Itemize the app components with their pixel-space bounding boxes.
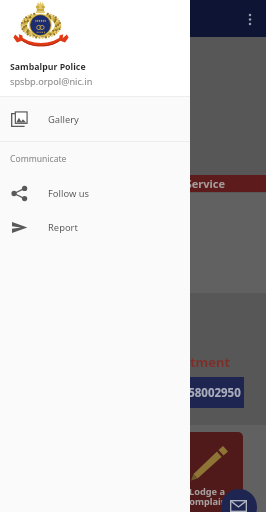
button[interactable]: Gallery [0, 97, 190, 141]
staticText: Follow us [48, 187, 90, 200]
button[interactable]: More options [238, 7, 262, 31]
button[interactable]: Lodge a Complaint [171, 432, 243, 512]
staticText: spsbp.orpol@nic.in [10, 75, 93, 88]
button[interactable]: 9658002950 [171, 377, 244, 408]
staticText: Police Recruitment [107, 353, 231, 371]
button[interactable]: Follow us [0, 176, 190, 210]
button[interactable]: Emergency Service [0, 175, 266, 192]
button[interactable]: Send email [221, 489, 257, 512]
staticText: Sambalpur Police [10, 61, 86, 73]
staticText: Communicate [10, 153, 67, 165]
button[interactable]: Report [0, 210, 190, 244]
staticText: 9658002950 [175, 385, 241, 401]
staticText: Report [48, 221, 78, 234]
staticText: Lodge a Complaint [171, 485, 243, 508]
staticText: Emergency Service [122, 176, 226, 191]
staticText: Gallery [48, 113, 79, 126]
